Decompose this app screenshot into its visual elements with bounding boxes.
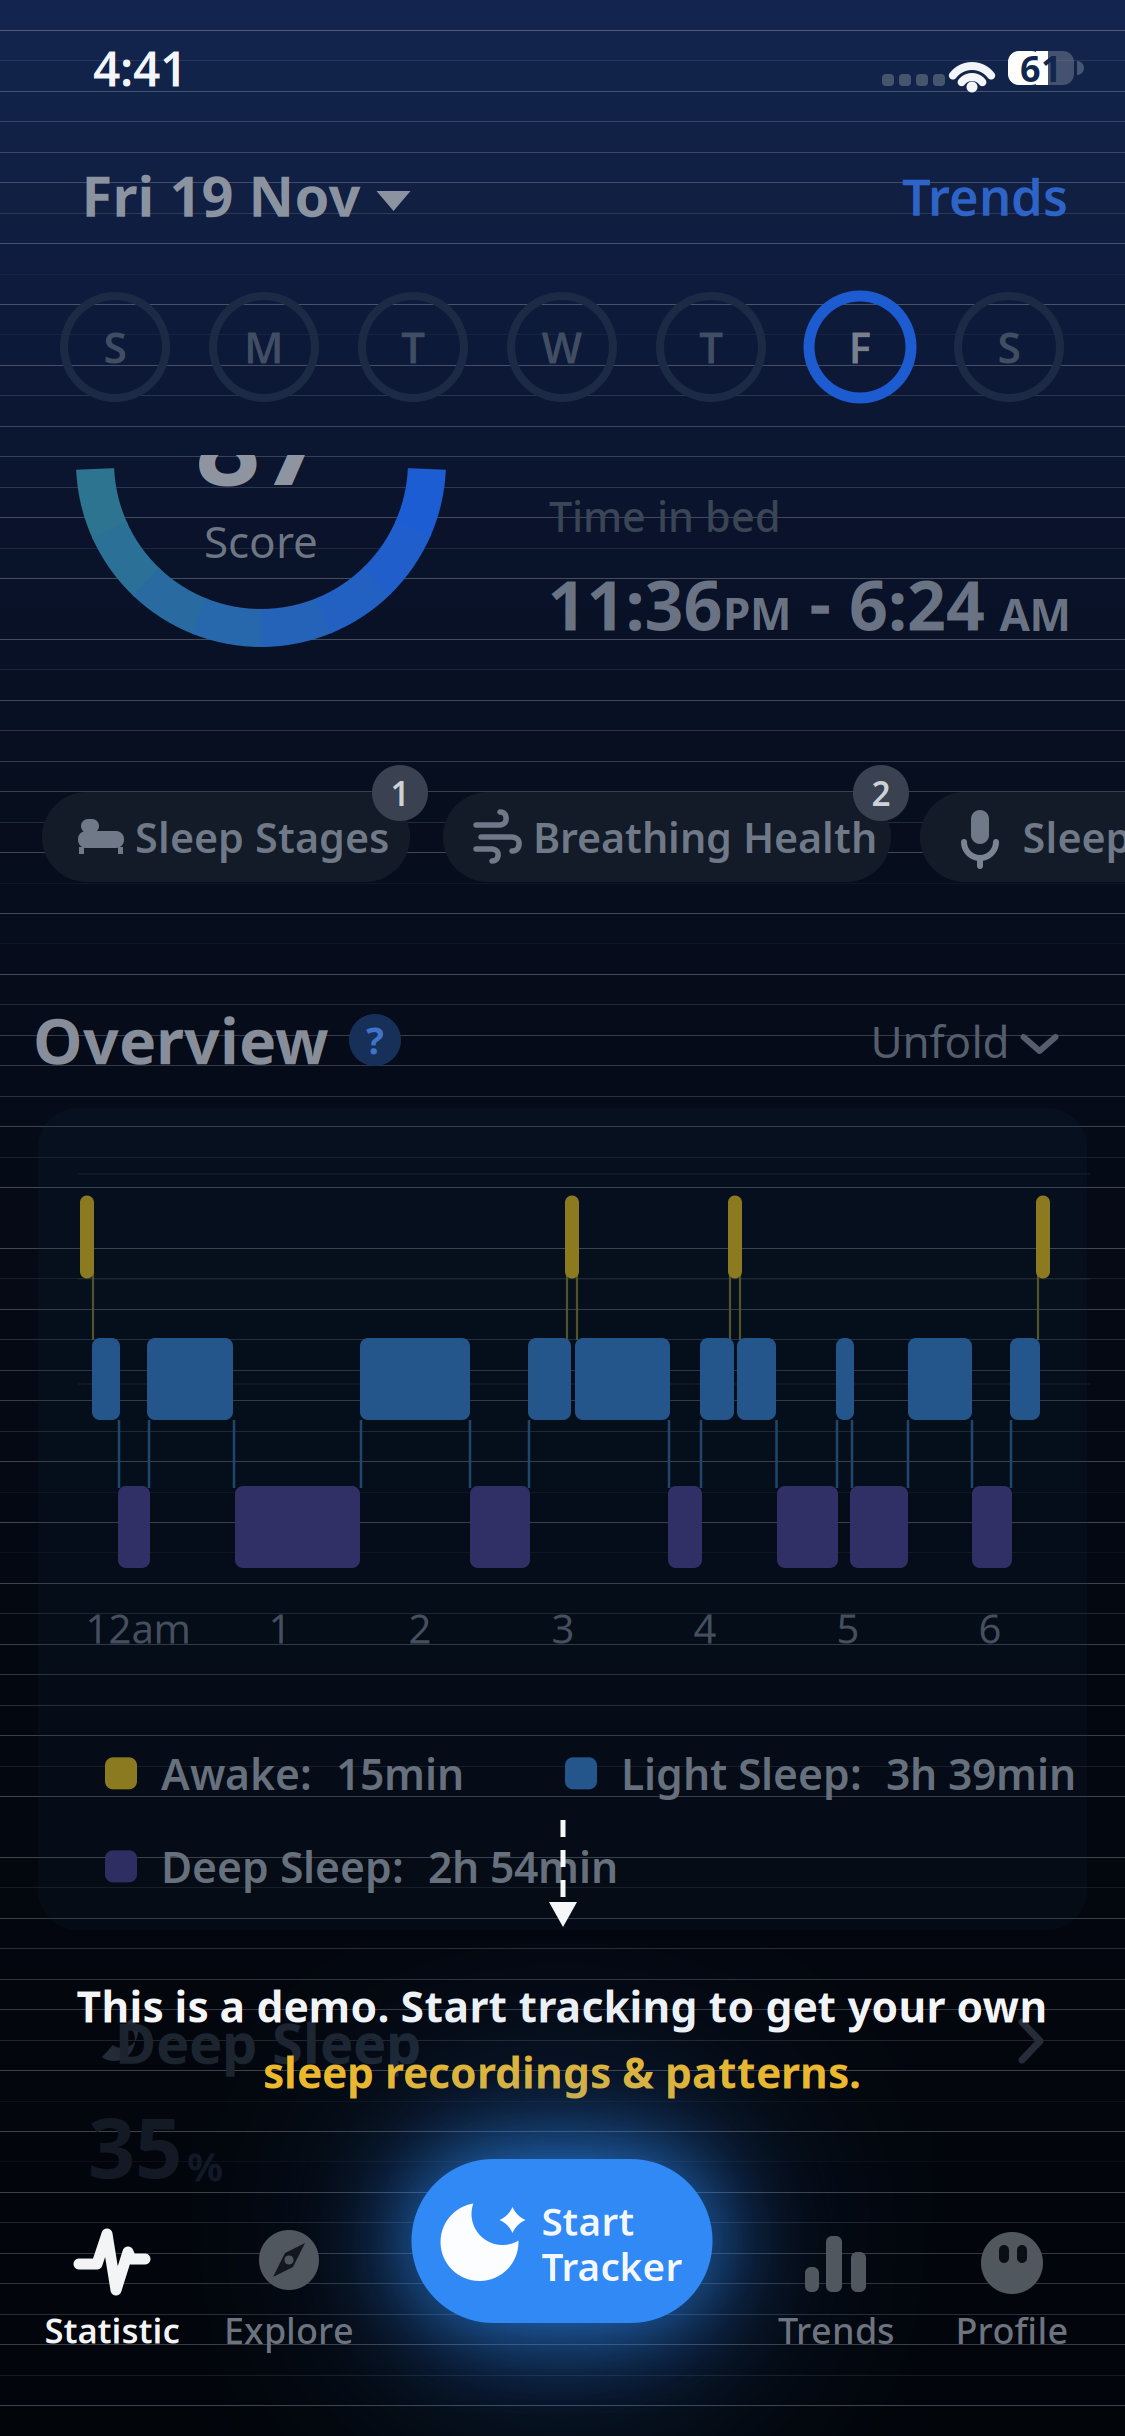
staticText: 11:36 (547, 559, 722, 649)
staticText: 2h 54min (428, 1838, 618, 1895)
button[interactable]: ? (349, 1014, 401, 1066)
button[interactable]: Explore (177, 2200, 401, 2360)
staticText: 35 (88, 2091, 182, 2201)
staticText: Explore (224, 2306, 354, 2354)
button[interactable]: Profile (900, 2200, 1124, 2360)
staticText: - (809, 558, 830, 646)
staticText: Overview (33, 998, 329, 1082)
button[interactable]: Trends (902, 162, 1068, 230)
button[interactable]: Start (411, 2159, 712, 2323)
staticText: Sleep Stages (135, 810, 389, 864)
button[interactable]: M (208, 291, 320, 403)
button[interactable]: Statistic (0, 2200, 224, 2360)
staticText: T (699, 319, 723, 375)
button[interactable]: T (357, 291, 469, 403)
staticText: 15min (336, 1745, 464, 1802)
staticText: ? (366, 1015, 384, 1065)
staticText: Trends (778, 2306, 894, 2354)
staticText: 5 (836, 1601, 859, 1654)
staticText: 4:41 (93, 36, 187, 100)
staticText: 3 (551, 1601, 574, 1654)
staticText: AM (999, 585, 1070, 643)
staticText: S (103, 319, 126, 375)
staticText: Trends (902, 162, 1068, 230)
button[interactable]: Sleep (920, 780, 1125, 892)
staticText: F (848, 319, 871, 375)
staticText: Tracker (541, 2240, 682, 2292)
staticText: 6:24 (849, 559, 985, 649)
staticText: Time in bed (549, 489, 781, 543)
button[interactable]: Trends (724, 2200, 948, 2360)
staticText: Unfold (870, 1012, 1009, 1070)
staticText: 4 (693, 1601, 716, 1654)
staticText: 6 (978, 1601, 1001, 1654)
staticText: Sleep (1022, 810, 1125, 864)
staticText: W (541, 319, 582, 375)
staticText: 2 (871, 771, 890, 815)
staticText: 87 (195, 365, 327, 517)
staticText: Score (204, 512, 318, 570)
staticText: M (244, 319, 284, 375)
staticText: 61 (1020, 44, 1062, 92)
button[interactable]: S (59, 291, 171, 403)
staticText: Deep Sleep (115, 2005, 421, 2079)
staticText: S (997, 319, 1020, 375)
staticText: Deep Sleep: (161, 1838, 404, 1895)
staticText: This is a demo. Start tracking to get yo… (76, 1978, 1047, 2034)
button[interactable]: Sleep Stages (42, 780, 432, 892)
staticText: T (401, 319, 425, 375)
staticText: 1 (390, 771, 409, 815)
button[interactable]: S (953, 291, 1065, 403)
button[interactable]: Unfold (870, 1012, 1055, 1070)
staticText: sleep recordings & patterns. (263, 2044, 861, 2100)
button[interactable]: Fri 19 Nov (81, 158, 410, 232)
staticText: Light Sleep: (621, 1745, 862, 1802)
staticText: 3h 39min (886, 1745, 1076, 1802)
staticText: 12am (85, 1601, 190, 1654)
staticText: Profile (955, 2306, 1068, 2354)
button[interactable]: F (804, 291, 916, 403)
button[interactable]: T (655, 291, 767, 403)
staticText: PM (723, 584, 791, 642)
staticText: 2 (408, 1601, 431, 1654)
staticText: % (187, 2139, 223, 2192)
staticText: Awake: (161, 1745, 312, 1802)
staticText: Start (541, 2195, 634, 2246)
staticText: Statistic (44, 2307, 179, 2353)
staticText: Fri 19 Nov (81, 158, 360, 232)
button[interactable]: Breathing Health (443, 780, 913, 892)
staticText: Breathing Health (533, 810, 877, 864)
button[interactable]: W (506, 291, 618, 403)
staticText: 1 (268, 1601, 291, 1654)
